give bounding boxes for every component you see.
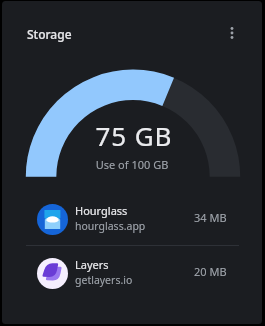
staticText: Hourglass (75, 203, 128, 218)
button[interactable]: Storage (17, 20, 82, 48)
staticText: 34 MB (194, 210, 227, 225)
staticText: Use of 100 GB (2, 157, 262, 172)
staticText: Storage (27, 26, 72, 42)
staticText: Layers (75, 257, 109, 272)
button[interactable]: Hourglass (2, 191, 262, 244)
button[interactable]: More options (212, 13, 251, 52)
staticText: 75 GB (4, 118, 262, 153)
staticText: hourglass.app (75, 219, 146, 233)
staticText: getlayers.io (75, 273, 133, 287)
button[interactable]: Layers (2, 245, 262, 298)
staticText: 20 MB (194, 264, 227, 279)
